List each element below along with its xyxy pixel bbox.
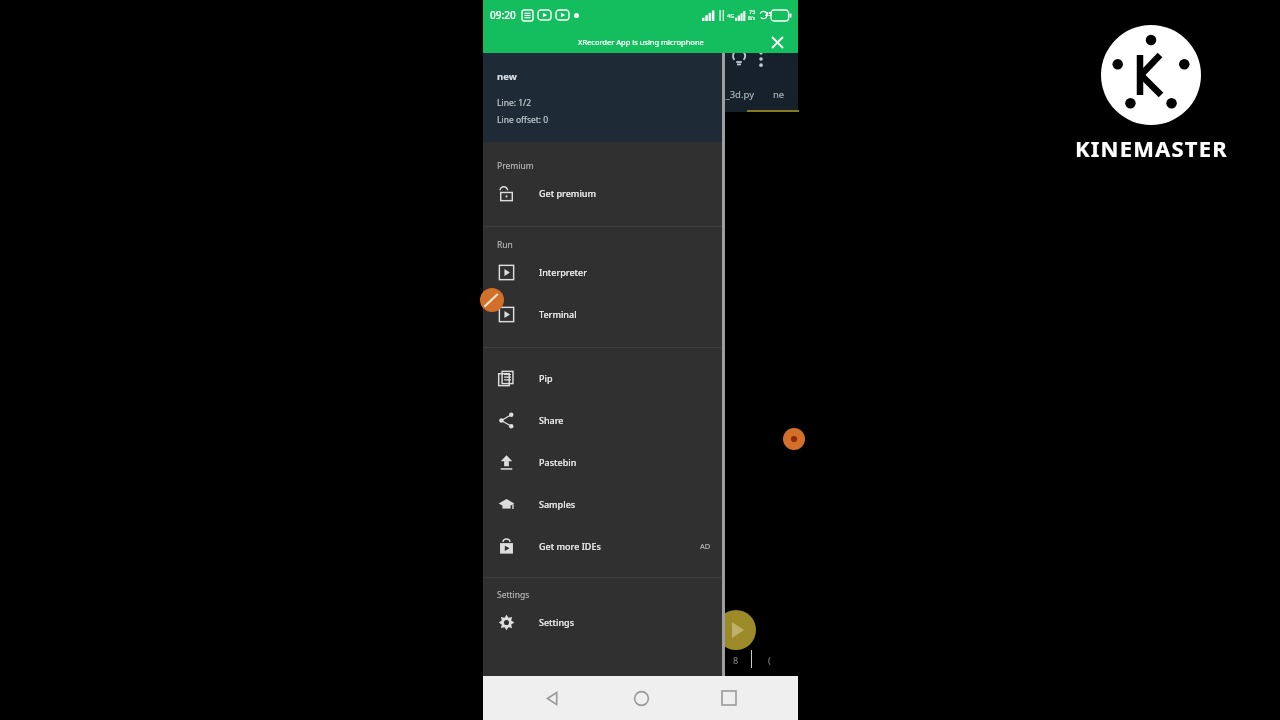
staticText: Get more IDEs <box>539 540 601 552</box>
staticText: Interpreter <box>539 266 588 278</box>
button[interactable]: Get premium <box>483 172 725 214</box>
staticText: ( <box>768 654 771 666</box>
staticText: KINEMASTER <box>1075 133 1228 163</box>
other: More options <box>754 48 768 70</box>
button[interactable]: Close <box>768 33 786 51</box>
staticText: Line: 1/2 <box>497 97 532 109</box>
staticText: Share <box>539 414 564 426</box>
staticText: Premium <box>497 160 534 172</box>
staticText: Terminal <box>539 308 577 320</box>
button[interactable]: Settings <box>483 601 725 643</box>
button[interactable]: new <box>483 53 725 142</box>
button[interactable]: Terminal <box>483 293 725 335</box>
staticText: Pip <box>539 372 553 384</box>
button[interactable]: Back <box>532 678 572 718</box>
button[interactable]: Pastebin <box>483 441 725 483</box>
staticText: Run <box>497 239 513 251</box>
button[interactable]: Samples <box>483 483 725 525</box>
staticText: ne <box>773 88 785 101</box>
staticText: XRecorder App is using microphone <box>578 37 704 47</box>
staticText: Get premium <box>539 187 596 199</box>
button[interactable]: Run <box>716 610 756 650</box>
button[interactable]: Get more IDEs <box>483 525 725 567</box>
button[interactable]: Recents <box>709 678 749 718</box>
staticText: 09:20 <box>490 8 516 22</box>
staticText: l_3d.py <box>723 88 754 101</box>
staticText: 8 <box>733 654 739 666</box>
staticText: 8/s <box>748 15 756 22</box>
button[interactable]: Pip <box>483 357 725 399</box>
staticText: 75 <box>749 8 756 15</box>
other: Hints <box>729 48 749 68</box>
staticText: 25 <box>765 10 772 18</box>
staticText: Pastebin <box>539 456 577 468</box>
button[interactable]: Home <box>621 678 661 718</box>
staticText: Samples <box>539 498 576 510</box>
staticText: AD <box>700 541 711 551</box>
staticText: new <box>497 70 517 83</box>
staticText: Settings <box>539 616 575 628</box>
staticText: 4G <box>727 12 735 19</box>
staticText: Line offset: 0 <box>497 114 549 126</box>
button[interactable]: Interpreter <box>483 251 725 293</box>
button[interactable]: Share <box>483 399 725 441</box>
staticText: Settings <box>497 589 530 601</box>
